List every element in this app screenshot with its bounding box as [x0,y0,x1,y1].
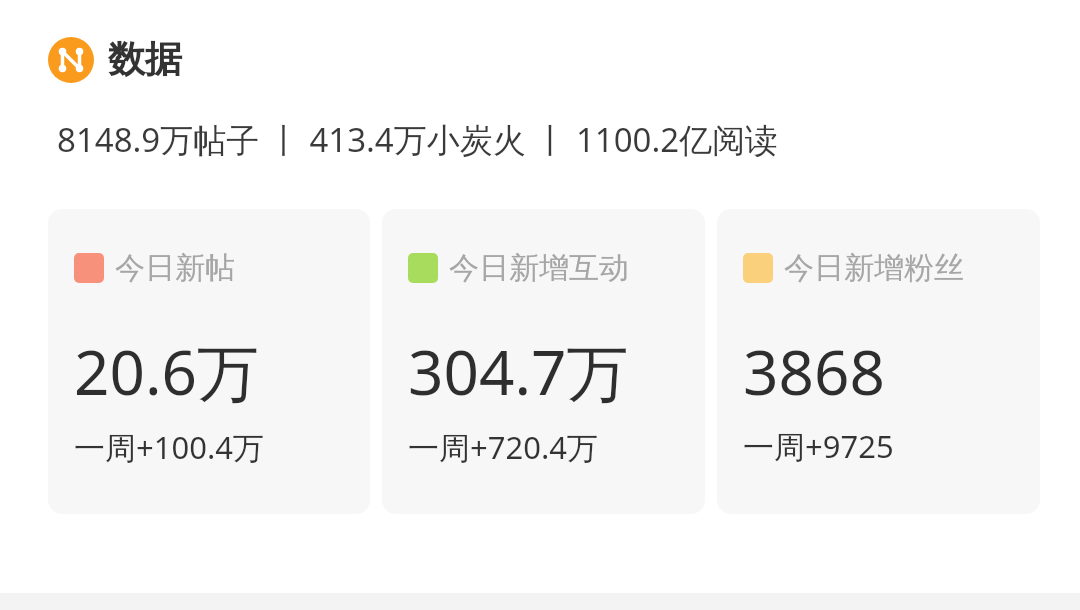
staticText: 3868 [743,329,885,413]
staticText: 304.7万 [408,329,629,414]
other: App logo [48,37,94,83]
button[interactable]: 今日新增互动 [382,209,705,514]
staticText: 数据 [108,36,182,83]
staticText: 8148.9万帖子 丨 413.4万小炭火 丨 1100.2亿阅读 [57,117,779,162]
button[interactable]: App logo [48,36,1080,83]
staticText: 今日新增粉丝 [784,249,964,287]
staticText: 今日新增互动 [449,249,629,287]
staticText: 一周+100.4万 [74,426,264,468]
button[interactable]: 今日新增粉丝 [717,209,1040,514]
staticText: 一周+720.4万 [408,426,598,468]
staticText: 今日新帖 [115,249,235,287]
button[interactable]: 今日新帖 [48,209,370,514]
staticText: 一周+9725 [743,425,894,467]
staticText: 20.6万 [74,329,260,414]
